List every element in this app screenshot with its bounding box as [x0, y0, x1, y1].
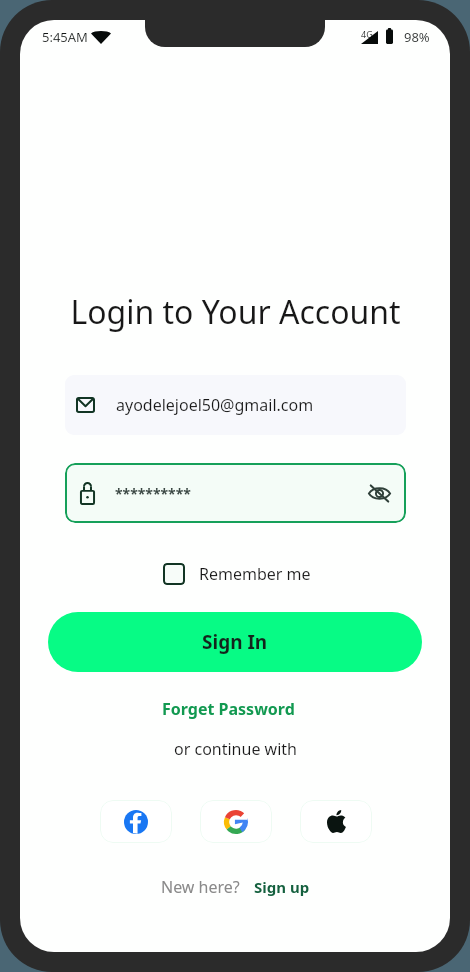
staticText: 98% — [404, 28, 430, 46]
button[interactable]: Sign up — [254, 877, 310, 897]
button[interactable]: ********** — [65, 463, 406, 523]
staticText: Sign In — [202, 629, 268, 655]
button[interactable]: Sign in with Apple — [300, 800, 372, 843]
button[interactable]: Sign In — [48, 612, 422, 672]
button[interactable]: ayodelejoel50@gmail.com — [65, 375, 406, 435]
staticText: 5:45AM — [42, 28, 88, 46]
staticText: Login to Your Account — [70, 290, 401, 334]
staticText: ayodelejoel50@gmail.com — [116, 394, 314, 416]
staticText: or continue with — [174, 738, 297, 760]
staticText: ********** — [115, 484, 191, 503]
staticText: Sign up — [254, 877, 310, 897]
staticText: 4G — [361, 28, 373, 40]
button[interactable]: Forget Password — [162, 698, 295, 720]
staticText: Remember me — [199, 563, 311, 585]
button[interactable]: Sign in with Google — [200, 800, 272, 843]
staticText: Forget Password — [162, 698, 295, 720]
button[interactable]: Show password — [364, 478, 394, 508]
button[interactable]: Remember me — [160, 560, 314, 588]
staticText: New here? — [161, 876, 240, 898]
button[interactable]: Sign in with Facebook — [100, 800, 172, 843]
